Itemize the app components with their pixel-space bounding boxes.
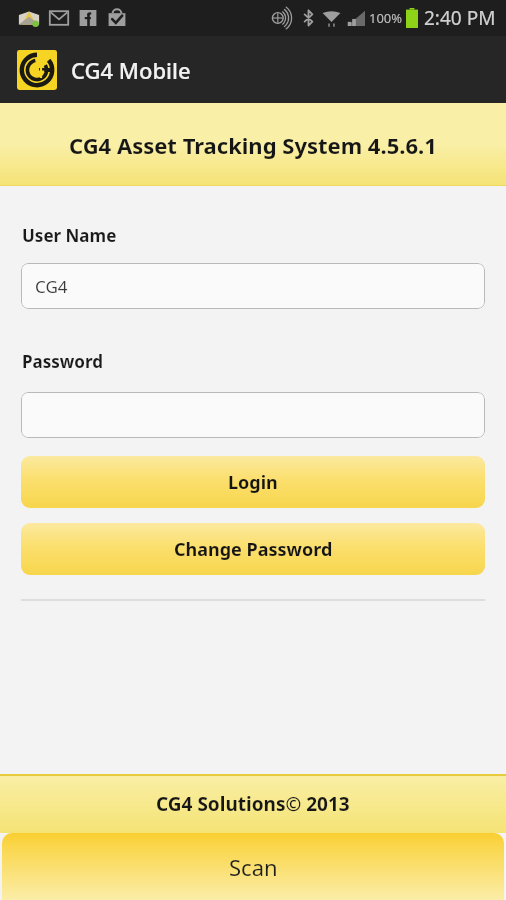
button[interactable] <box>21 392 485 438</box>
staticText: CG4 Mobile <box>71 55 191 85</box>
staticText: User Name <box>22 224 117 247</box>
staticText: 2:40 PM <box>424 5 496 31</box>
staticText: Scan <box>229 852 278 882</box>
button[interactable]: Scan <box>2 833 504 900</box>
staticText: CG4 <box>35 275 68 298</box>
staticText: Login <box>228 470 278 495</box>
staticText: CG4 Asset Tracking System 4.5.6.1 <box>69 130 437 160</box>
button[interactable]: CG4 <box>21 263 485 309</box>
staticText: Password <box>22 350 103 373</box>
button[interactable]: Change Password <box>21 523 485 575</box>
staticText: Change Password <box>174 537 333 562</box>
staticText: CG4 Solutions© 2013 <box>156 791 350 817</box>
button[interactable]: Login <box>21 456 485 508</box>
staticText: 100% <box>369 9 403 27</box>
